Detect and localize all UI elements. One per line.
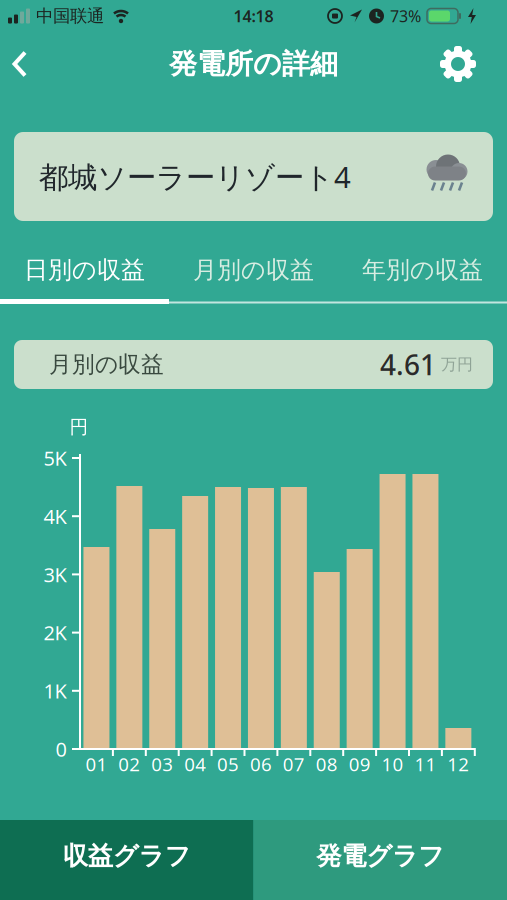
staticText: 都城ソーラーリゾート4 — [39, 157, 351, 196]
staticText: 06 — [250, 752, 272, 776]
button[interactable]: 発電グラフ — [253, 820, 507, 900]
button[interactable] — [440, 46, 507, 82]
button[interactable]: 月別の収益 — [169, 247, 338, 293]
staticText: 発電所の詳細 — [169, 47, 338, 81]
staticText: 10 — [382, 752, 404, 776]
staticText: 発電グラフ — [316, 840, 444, 871]
staticText: 12 — [447, 752, 469, 776]
staticText: 08 — [316, 752, 338, 776]
staticText: 03 — [151, 752, 173, 776]
staticText: 14:18 — [233, 5, 273, 27]
staticText: 01 — [85, 752, 107, 776]
staticText: 73% — [390, 5, 421, 27]
staticText: 万円 — [436, 355, 473, 374]
button[interactable]: 年別の収益 — [338, 247, 507, 293]
staticText: 02 — [118, 752, 140, 776]
button[interactable]: 収益グラフ — [0, 820, 253, 900]
button[interactable]: 都城ソーラーリゾート4 — [14, 132, 493, 221]
staticText: 4K — [43, 503, 66, 529]
staticText: 05 — [217, 752, 239, 776]
button[interactable] — [0, 50, 28, 77]
staticText: 4.61 — [380, 346, 436, 383]
staticText: 年別の収益 — [362, 255, 483, 285]
staticText: 09 — [349, 752, 371, 776]
staticText: 11 — [414, 752, 436, 776]
staticText: 日別の収益 — [24, 255, 145, 285]
staticText: 収益グラフ — [63, 840, 191, 871]
button[interactable]: 日別の収益 — [0, 247, 169, 293]
staticText: 中国联通 — [36, 5, 104, 27]
staticText: 04 — [184, 752, 206, 776]
staticText: 円 — [69, 415, 88, 438]
staticText: 0 — [55, 736, 66, 762]
staticText: 3K — [43, 561, 66, 588]
staticText: 月別の収益 — [49, 351, 164, 378]
staticText: 5K — [43, 445, 66, 471]
staticText: 1K — [43, 677, 66, 704]
staticText: 2K — [43, 619, 66, 646]
button[interactable]: 月別の収益 — [14, 340, 493, 389]
staticText: 07 — [283, 752, 305, 776]
staticText: 月別の収益 — [193, 255, 314, 285]
